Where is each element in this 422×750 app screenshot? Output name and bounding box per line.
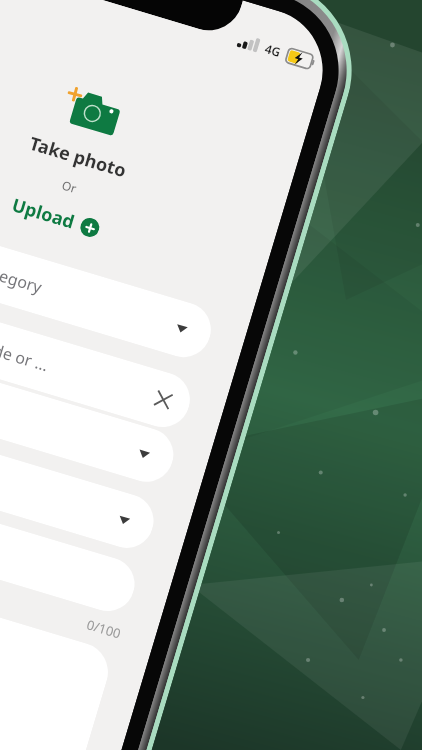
staticText: 4G	[263, 40, 283, 60]
staticText: Upload	[9, 192, 78, 235]
button[interactable]: Upload	[9, 192, 102, 242]
button[interactable]	[0, 560, 115, 750]
button[interactable]: Enter product name	[0, 474, 141, 618]
staticText: 0/100	[85, 615, 123, 643]
staticText: Enter product name	[0, 498, 3, 562]
staticText: Enter barcode or ...	[0, 314, 52, 377]
staticText: Or	[60, 177, 79, 196]
button[interactable]: Select size	[0, 411, 160, 554]
staticText: Select category	[0, 244, 45, 298]
button[interactable]: Select category	[0, 219, 218, 364]
button[interactable]: Take photo	[56, 83, 124, 138]
staticText: Take photo	[26, 131, 129, 183]
button[interactable]: Select brand	[0, 345, 180, 488]
button[interactable]: Enter barcode or ...	[0, 289, 197, 434]
